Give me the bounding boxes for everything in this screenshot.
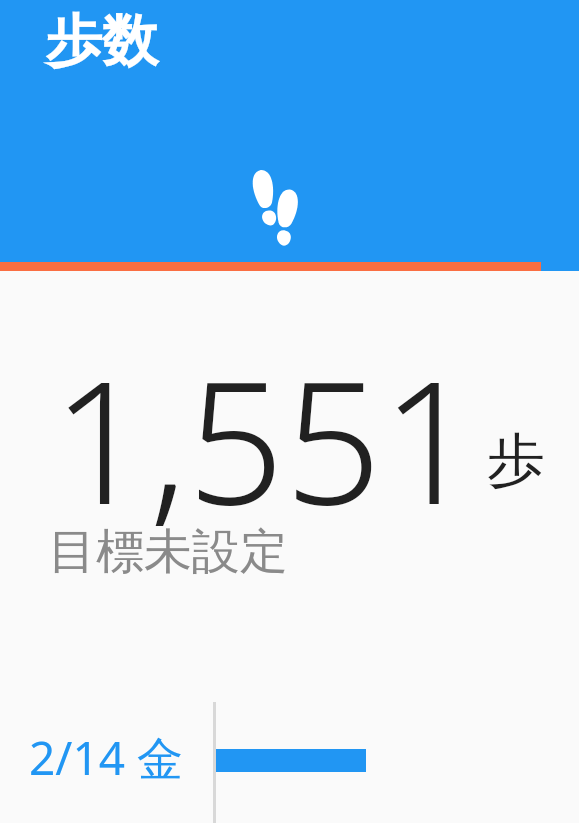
button[interactable] [0,0,579,262]
staticText: 歩 [487,424,545,497]
other: Steps footprints [245,161,307,239]
staticText: 歩数 [46,6,158,77]
staticText: 1,551 [52,322,479,554]
staticText: 目標未設定 [48,522,288,582]
staticText: 2/14 金 [29,726,184,789]
